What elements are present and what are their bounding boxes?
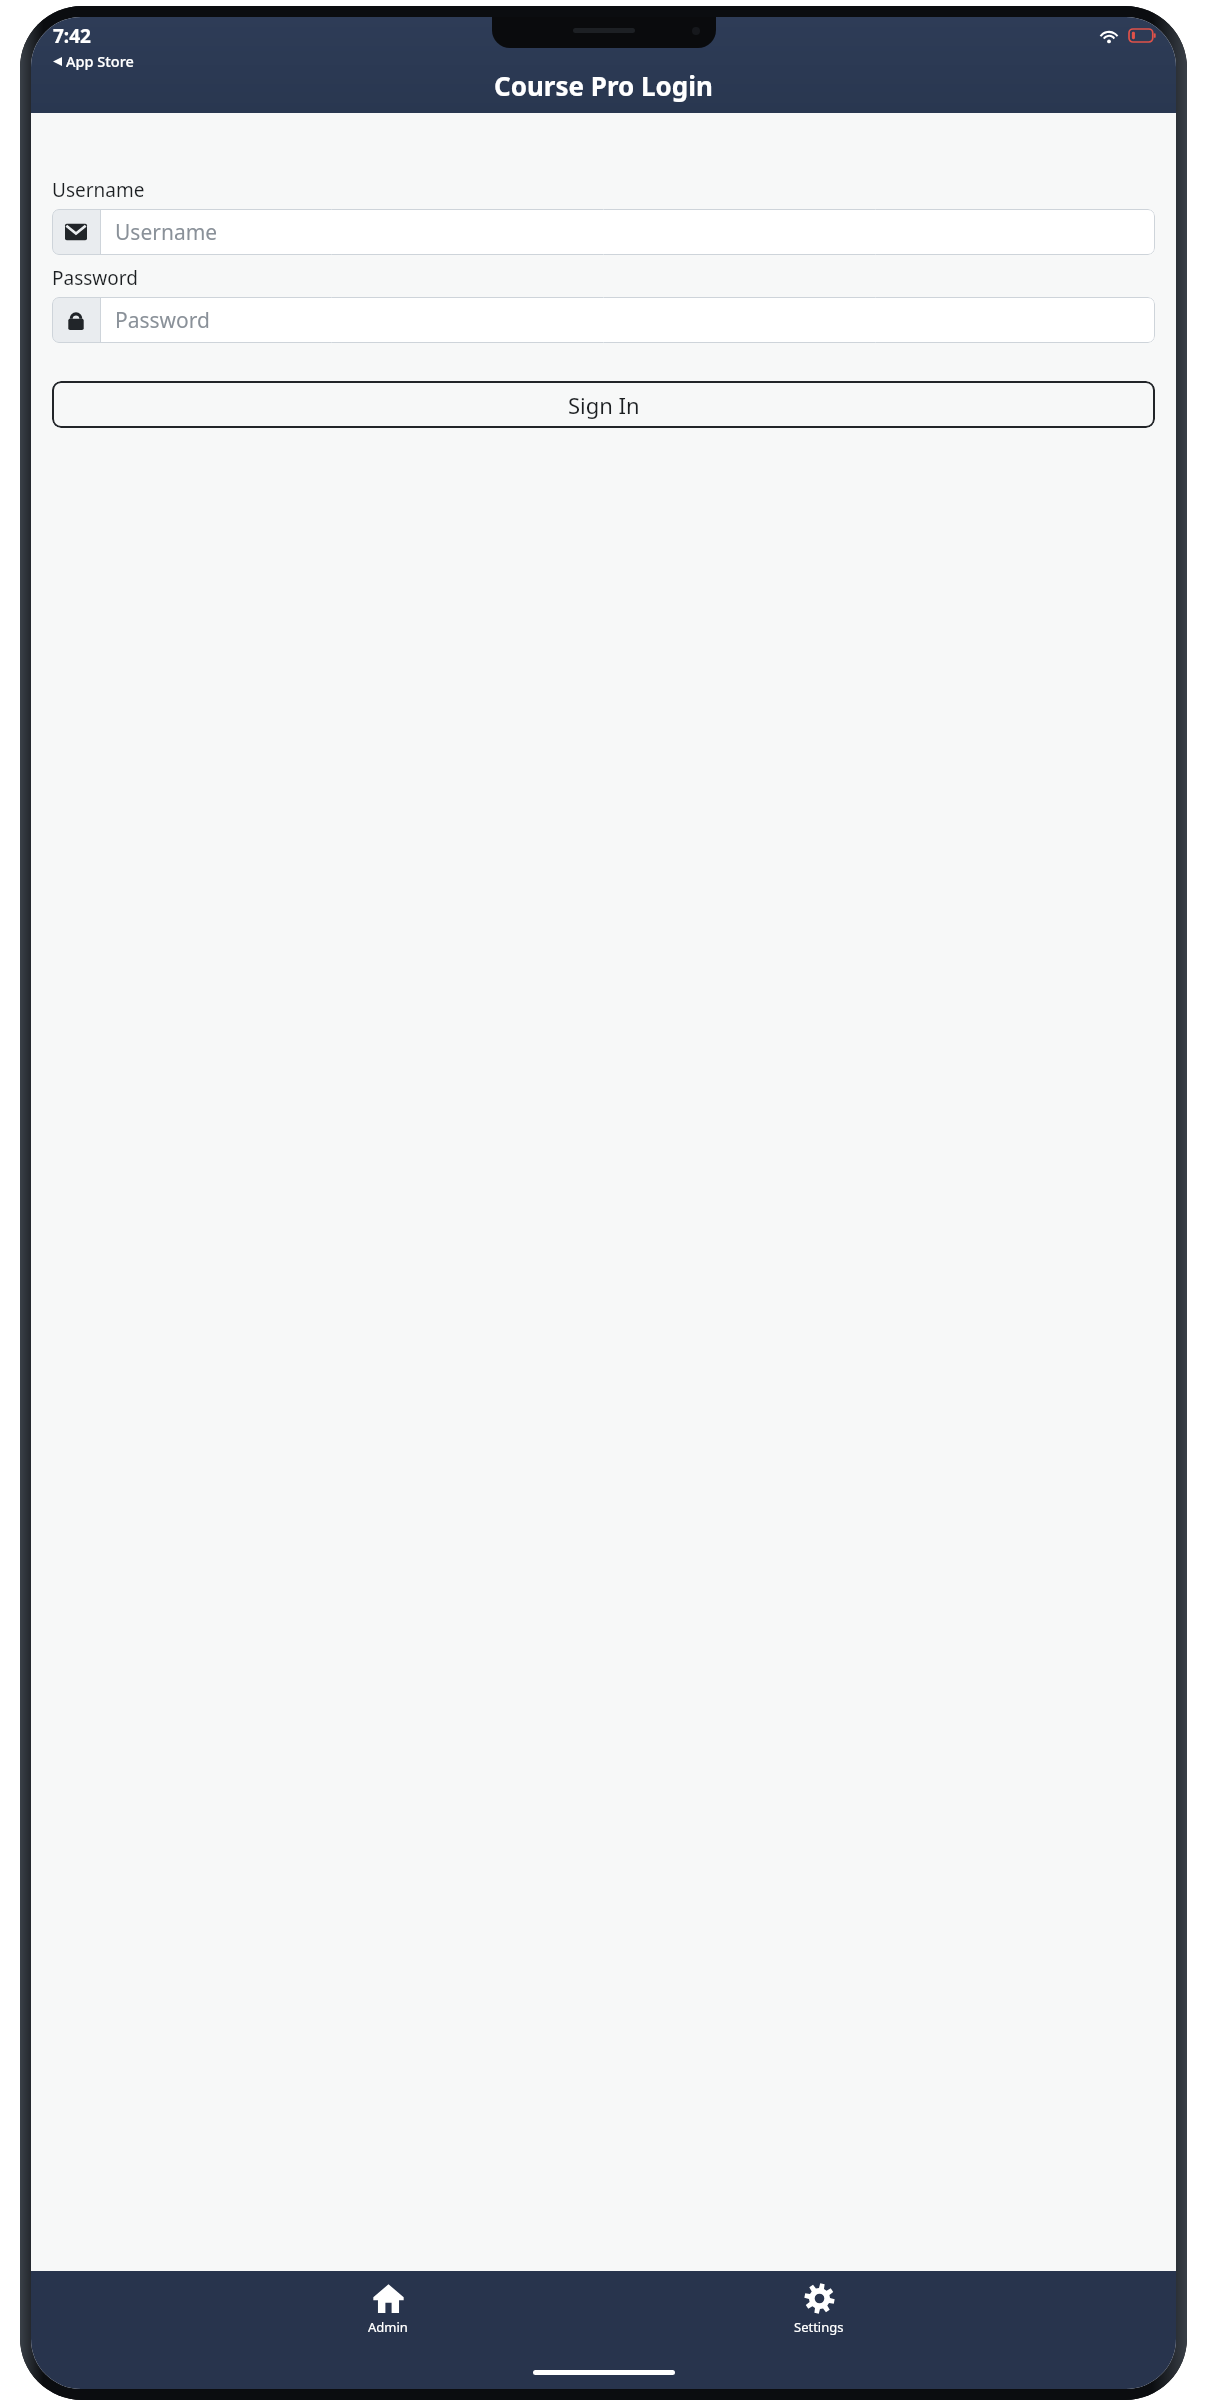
button[interactable]: Password: [52, 297, 1155, 343]
button[interactable]: Settings: [744, 2279, 894, 2340]
staticText: Password: [115, 306, 210, 335]
other: Admin: [373, 2283, 404, 2314]
staticText: Password: [52, 265, 138, 291]
other: Password: [65, 309, 87, 331]
button[interactable]: Email: [52, 209, 1155, 255]
staticText: Admin: [368, 2318, 408, 2336]
other: Settings: [804, 2283, 835, 2314]
other: Battery low: [1129, 29, 1156, 42]
staticText: Course Pro Login: [31, 68, 1176, 103]
staticText: Username: [52, 177, 145, 203]
staticText: Settings: [794, 2318, 844, 2336]
staticText: App Store: [66, 51, 134, 71]
other: Email: [65, 221, 87, 243]
other: Wi-Fi: [1098, 27, 1120, 43]
staticText: Sign In: [568, 390, 640, 420]
button[interactable]: Sign In: [52, 381, 1155, 428]
staticText: 7:42: [53, 23, 91, 49]
staticText: Username: [115, 218, 218, 247]
button[interactable]: Admin: [313, 2279, 463, 2340]
